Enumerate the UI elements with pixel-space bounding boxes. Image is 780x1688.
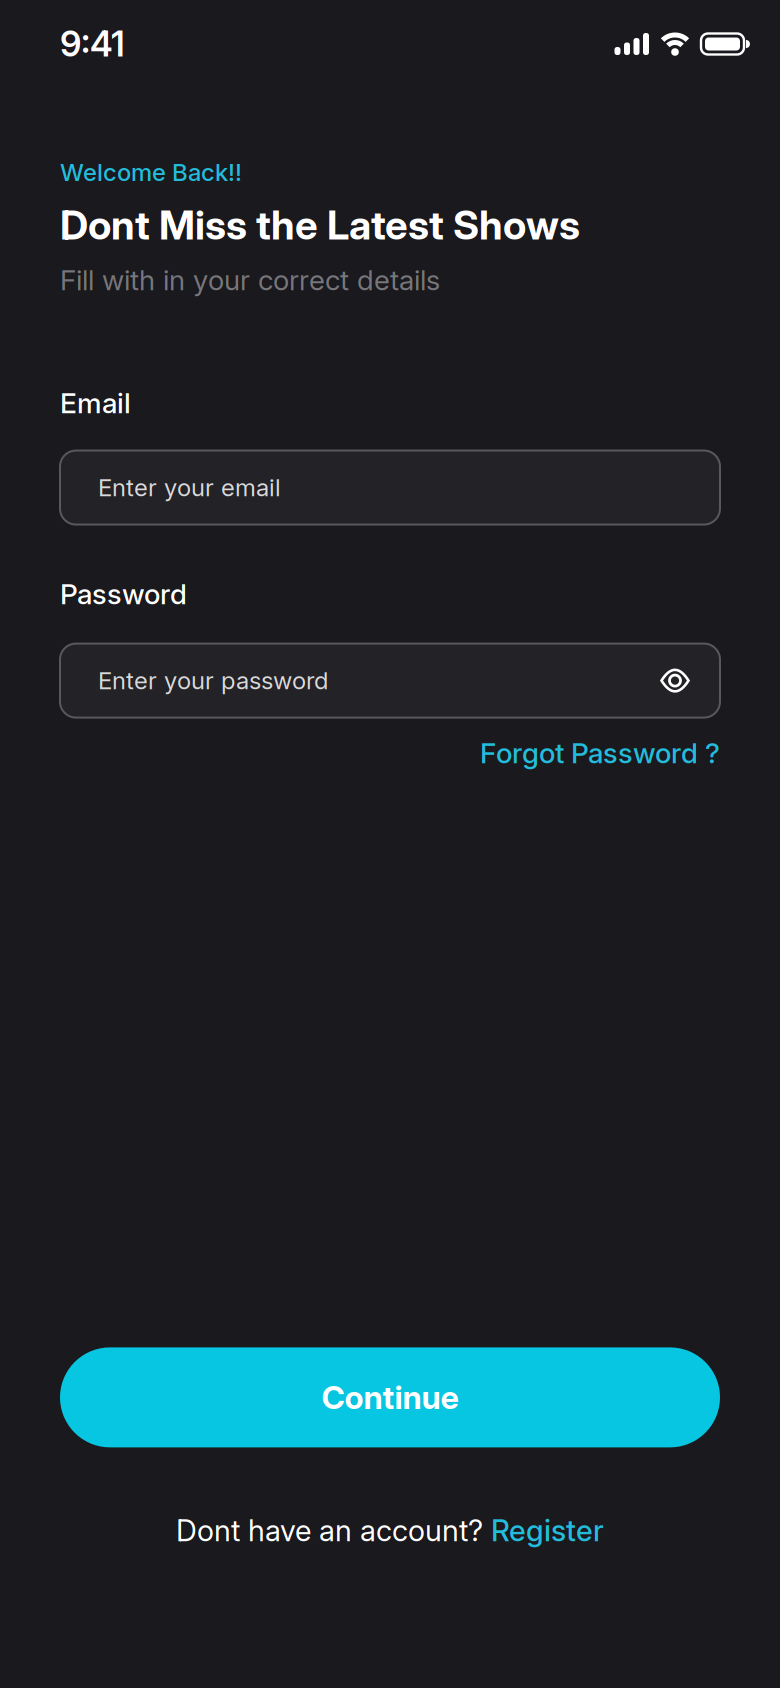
staticText: Continue	[321, 1378, 458, 1416]
button[interactable]: Register	[491, 1513, 604, 1548]
staticText: Enter your password	[98, 666, 328, 695]
staticText: 9:41	[60, 24, 125, 64]
staticText: Fill with in your correct details	[60, 263, 440, 296]
staticText: Welcome Back!!	[60, 158, 242, 186]
button[interactable]: Forgot Password ?	[480, 737, 720, 770]
staticText: Dont Miss the Latest Shows	[60, 201, 580, 248]
button[interactable]: Enter your password	[60, 644, 720, 718]
staticText: Register	[491, 1513, 604, 1548]
staticText: Password	[60, 578, 187, 611]
staticText: Forgot Password ?	[480, 737, 720, 770]
staticText: Enter your email	[98, 473, 281, 502]
button[interactable]	[660, 669, 690, 693]
button[interactable]: Continue	[60, 1347, 720, 1447]
button[interactable]: Enter your email	[60, 451, 720, 525]
staticText: Dont have an account?	[176, 1513, 491, 1548]
staticText: Email	[60, 386, 131, 419]
